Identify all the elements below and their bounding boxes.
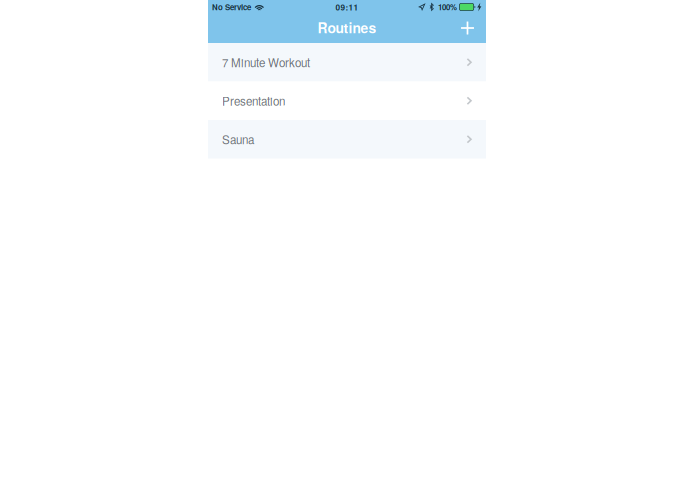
button[interactable]: Add routine [449, 14, 486, 43]
staticText: 09:11 [335, 1, 358, 13]
staticText: Sauna [222, 131, 254, 147]
staticText: 100% [438, 1, 457, 13]
button[interactable]: 7 Minute Workout [208, 43, 486, 81]
staticText: Routines [317, 18, 376, 37]
staticText: No Service [212, 1, 251, 13]
staticText: 7 Minute Workout [222, 54, 310, 70]
button[interactable]: Sauna [208, 120, 486, 158]
staticText: Presentation [222, 92, 285, 109]
button[interactable]: Presentation [208, 81, 486, 120]
